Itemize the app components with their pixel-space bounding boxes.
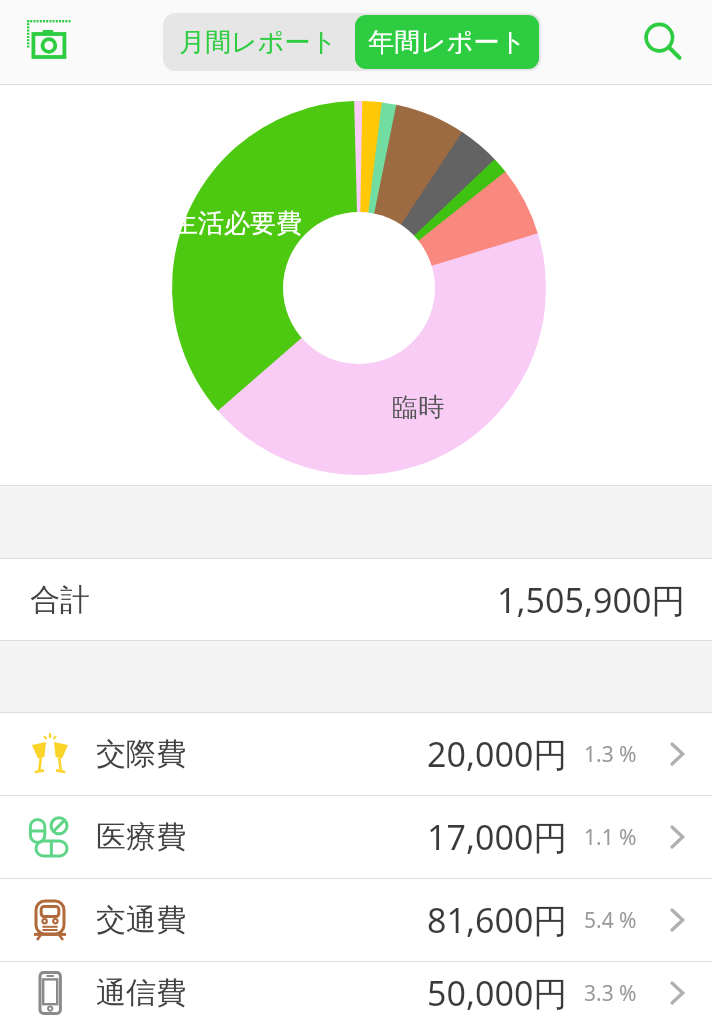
staticText: 交際費 <box>96 735 186 773</box>
button[interactable]: 合計 <box>0 559 712 640</box>
staticText: 交通費 <box>96 901 186 939</box>
button[interactable]: 月間レポート <box>163 13 353 71</box>
button[interactable]: 医療費 <box>0 796 712 878</box>
button[interactable]: 交際費 <box>0 713 712 795</box>
button[interactable]: Capture receipt with camera <box>16 9 82 75</box>
staticText: 合計 <box>30 581 90 619</box>
staticText: 50,000円 <box>427 970 568 1016</box>
staticText: 1.1 % <box>584 823 637 852</box>
staticText: 年間レポート <box>368 26 526 59</box>
button[interactable]: Search <box>632 11 694 73</box>
staticText: 3.3 % <box>584 979 637 1008</box>
button[interactable]: 年間レポート <box>355 15 539 69</box>
button[interactable]: 交通費 <box>0 879 712 961</box>
staticText: 1,505,900円 <box>497 577 686 623</box>
staticText: 医療費 <box>96 818 186 856</box>
staticText: 月間レポート <box>179 26 337 59</box>
staticText: 1.3 % <box>584 740 637 769</box>
staticText: 5.4 % <box>584 906 637 935</box>
button[interactable]: 通信費 <box>0 962 712 1024</box>
staticText: 81,600円 <box>427 897 568 943</box>
staticText: 生活必要費 <box>172 207 302 240</box>
staticText: 通信費 <box>96 974 186 1012</box>
staticText: 臨時 <box>392 391 444 424</box>
staticText: 17,000円 <box>427 814 568 860</box>
staticText: 20,000円 <box>427 731 568 777</box>
